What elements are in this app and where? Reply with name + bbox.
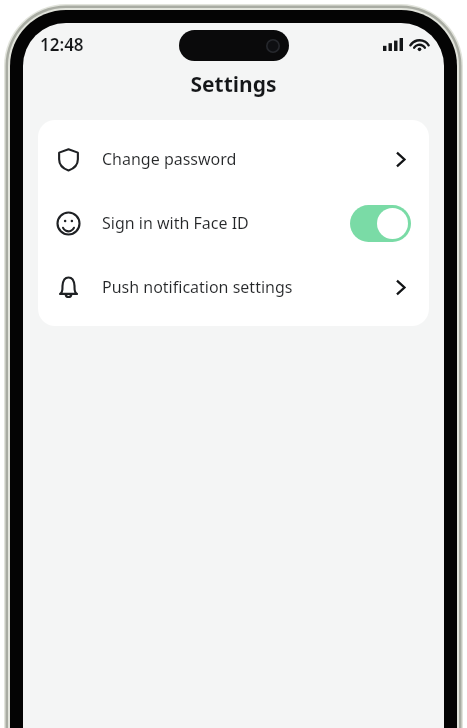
button[interactable]: Push notification settings [389, 274, 411, 300]
staticText: Sign in with Face ID [102, 212, 350, 234]
button[interactable]: Sign in with Face ID [38, 191, 429, 255]
staticText: Settings [190, 70, 277, 99]
button[interactable]: Change password [38, 127, 429, 191]
button[interactable]: Push notification settings [38, 255, 429, 319]
staticText: 12:48 [40, 33, 84, 56]
staticText: Push notification settings [102, 276, 389, 298]
button[interactable]: Sign in with Face ID, on [350, 205, 411, 242]
staticText: Change password [102, 148, 389, 170]
button[interactable]: Change password [389, 146, 411, 172]
